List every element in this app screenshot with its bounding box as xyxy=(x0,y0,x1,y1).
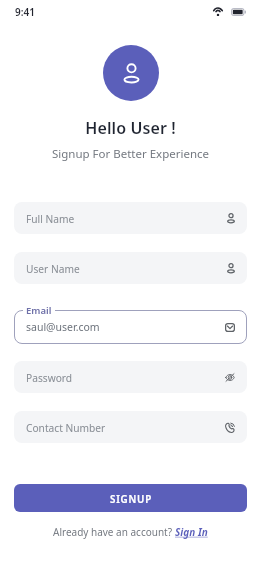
staticText: Already have an account? xyxy=(53,525,175,539)
staticText: Password xyxy=(26,371,73,385)
button[interactable]: User Name xyxy=(14,252,247,284)
other: Profile xyxy=(227,263,235,273)
other: Show password xyxy=(225,373,235,382)
staticText: saul@user.com xyxy=(26,320,100,334)
button[interactable]: Contact Number xyxy=(14,411,247,443)
staticText: Hello User ! xyxy=(0,117,261,139)
other: Email xyxy=(225,323,235,332)
staticText: Contact Number xyxy=(26,421,106,435)
button[interactable]: SIGNUP xyxy=(14,484,247,512)
other: Profile xyxy=(227,213,235,223)
button[interactable]: Password xyxy=(14,361,247,393)
staticText: 9:41 xyxy=(15,5,35,19)
staticText: Email xyxy=(26,304,52,317)
button[interactable]: saul@user.com xyxy=(14,310,247,344)
staticText: Sign In xyxy=(175,525,208,539)
staticText: User Name xyxy=(26,262,80,276)
staticText: Full Name xyxy=(26,212,75,226)
staticText: Signup For Better Experience xyxy=(0,146,261,162)
staticText: SIGNUP xyxy=(110,493,153,506)
button[interactable]: Full Name xyxy=(14,202,247,234)
button[interactable]: Sign In xyxy=(175,525,208,539)
other: Call xyxy=(225,422,235,433)
